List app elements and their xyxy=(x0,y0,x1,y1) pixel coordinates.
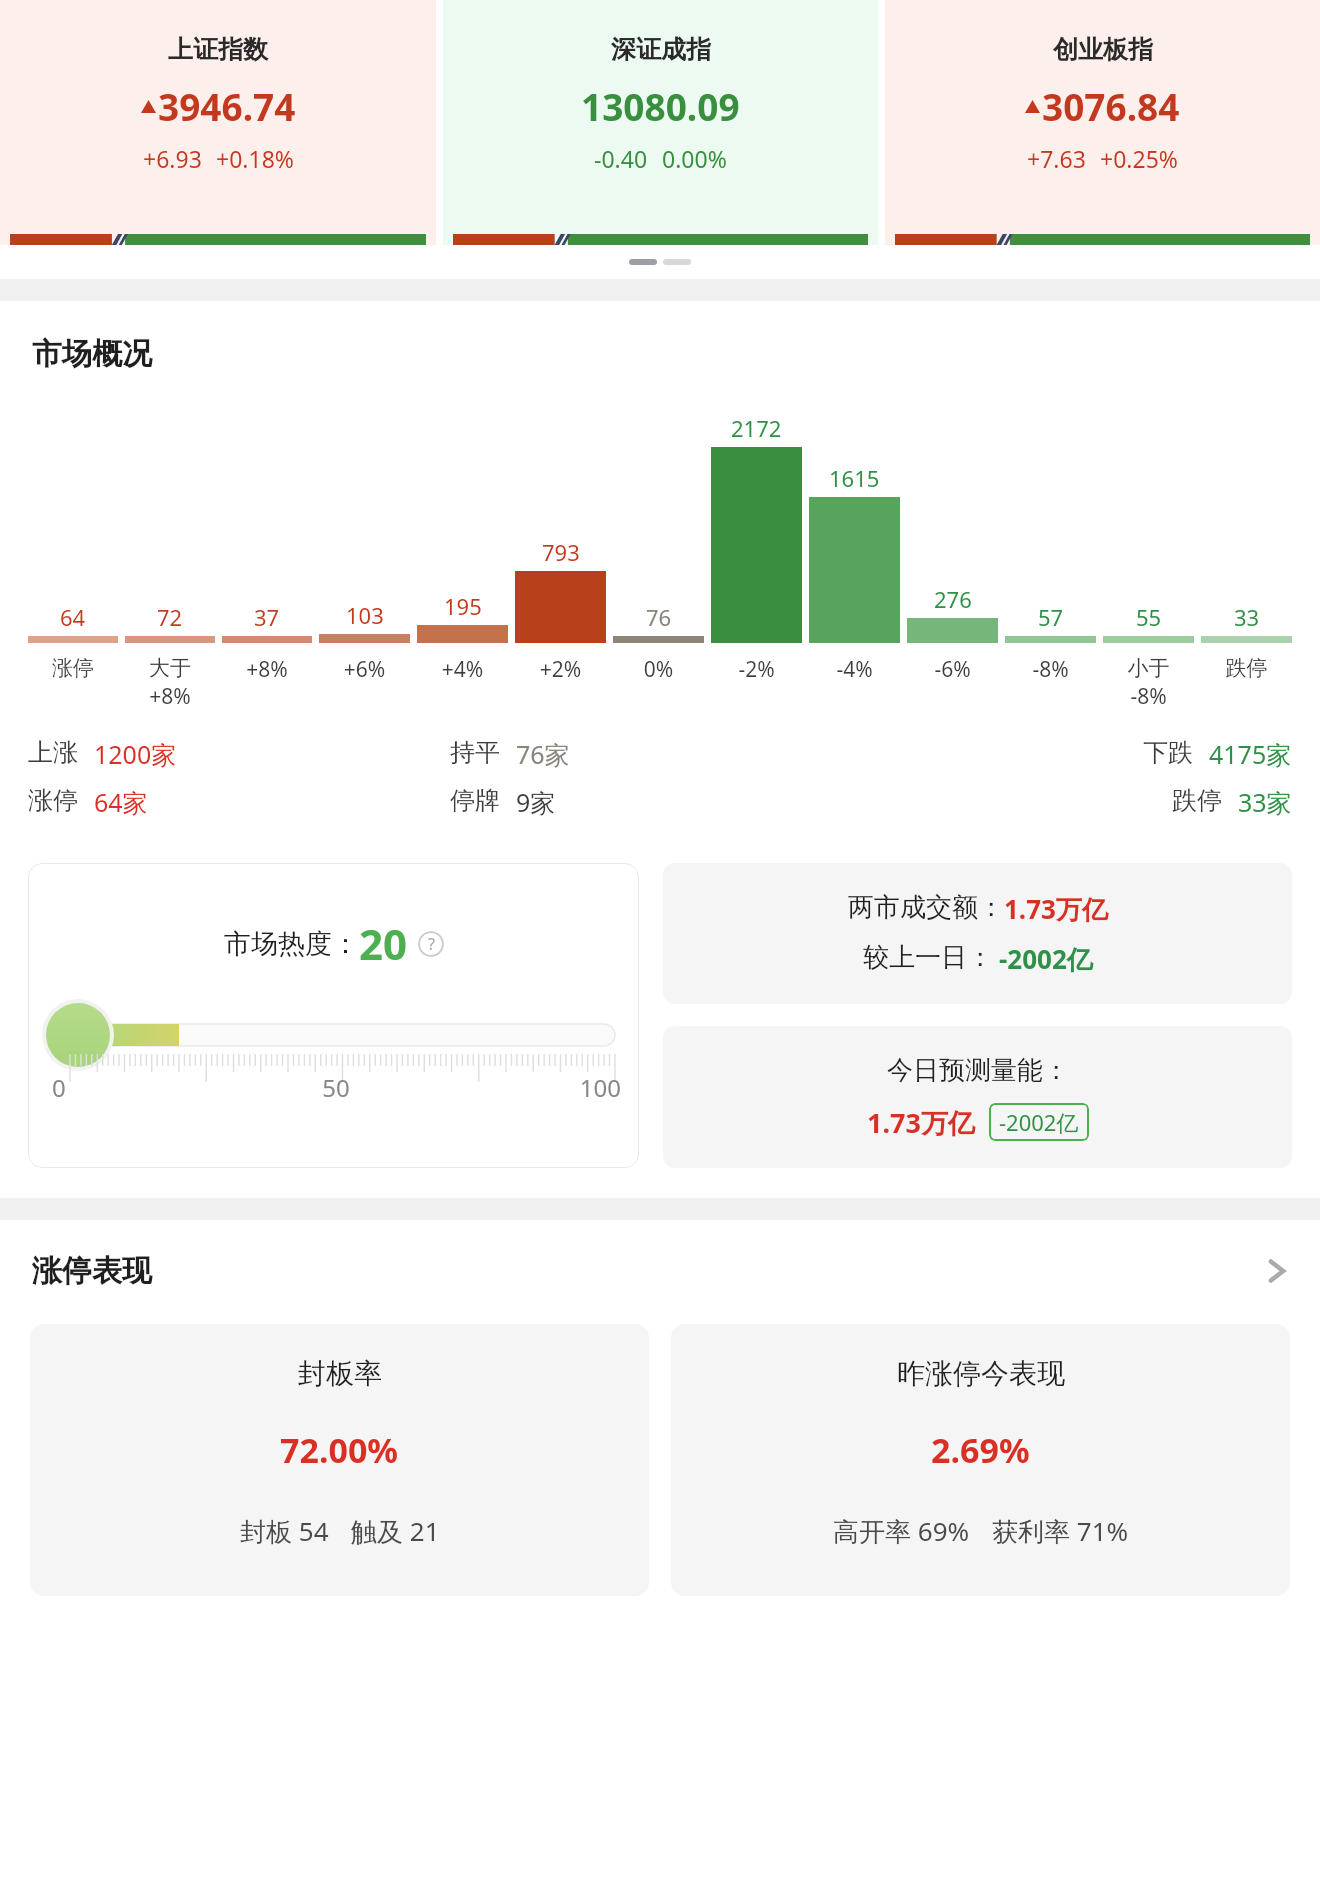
button[interactable]: 帮助 xyxy=(418,931,444,957)
staticText: 72 xyxy=(157,602,183,632)
staticText: 3946.74 xyxy=(158,81,296,131)
staticText: 0% xyxy=(613,655,704,684)
staticText: 76家 xyxy=(516,737,570,771)
staticText: +0.25% xyxy=(1100,143,1178,174)
staticText: 4175家 xyxy=(1209,737,1292,771)
button[interactable]: 封板率 xyxy=(30,1324,649,1596)
staticText: 1200家 xyxy=(94,737,177,771)
button[interactable]: 上证指数 xyxy=(0,0,436,245)
staticText: 76 xyxy=(646,602,672,632)
staticText: -8% xyxy=(1005,655,1096,684)
staticText: 2172 xyxy=(731,413,782,443)
staticText: 市场热度： xyxy=(224,927,359,961)
staticText: 触及 21 xyxy=(351,1513,440,1549)
staticText: +6% xyxy=(319,655,410,684)
staticText: 1.73万亿 xyxy=(867,1104,975,1141)
staticText: 封板率 xyxy=(298,1356,382,1391)
staticText: 停牌 xyxy=(450,785,500,816)
button[interactable]: 涨停表现 xyxy=(0,1252,1320,1290)
staticText: -2002亿 xyxy=(999,1107,1079,1137)
staticText: -2% xyxy=(711,655,802,684)
button[interactable]: 市场热度： xyxy=(28,863,639,1168)
staticText: 涨停 xyxy=(28,655,118,681)
staticText: -0.40 xyxy=(594,143,648,174)
staticText: 103 xyxy=(346,600,384,630)
staticText: 57 xyxy=(1038,602,1064,632)
staticText: 195 xyxy=(444,591,482,621)
staticText: 100 xyxy=(431,1071,621,1104)
staticText: 0 xyxy=(52,1071,241,1104)
staticText: 33家 xyxy=(1238,785,1292,819)
staticText: 13080.09 xyxy=(581,81,740,131)
staticText: +4% xyxy=(417,655,508,684)
button[interactable]: 深证成指 xyxy=(443,0,878,245)
staticText: 55 xyxy=(1136,602,1162,632)
staticText: 今日预测量能： xyxy=(887,1054,1069,1087)
staticText: 37 xyxy=(254,602,280,632)
staticText: +7.63 xyxy=(1027,143,1086,174)
staticText: -6% xyxy=(907,655,998,684)
staticText: +8% xyxy=(222,655,312,684)
staticText: 较上一日： xyxy=(863,941,993,974)
staticText: 涨停 xyxy=(28,785,78,816)
button[interactable]: 两市成交额： xyxy=(663,863,1292,1004)
staticText: -4% xyxy=(809,655,900,684)
staticText: 高开率 69% xyxy=(833,1513,970,1549)
staticText: 793 xyxy=(542,537,580,567)
staticText: 64 xyxy=(60,602,86,632)
button[interactable]: 今日预测量能： xyxy=(663,1026,1292,1168)
staticText: 0.00% xyxy=(662,143,727,174)
staticText: 涨停表现 xyxy=(32,1252,1266,1290)
staticText: 下跌 xyxy=(1143,737,1193,768)
staticText: 3076.84 xyxy=(1042,81,1180,131)
staticText: +6.93 xyxy=(143,143,202,174)
staticText: 9家 xyxy=(516,785,556,819)
staticText: 市场概况 xyxy=(32,335,152,373)
staticText: 封板 54 xyxy=(240,1513,329,1549)
staticText: -2002亿 xyxy=(999,941,1093,977)
staticText: +0.18% xyxy=(216,143,294,174)
staticText: 2.69% xyxy=(931,1427,1030,1473)
staticText: 小于 -8% xyxy=(1103,655,1194,711)
staticText: 大于 +8% xyxy=(125,655,215,711)
staticText: 33 xyxy=(1234,602,1260,632)
staticText: 持平 xyxy=(450,737,500,768)
staticText: 1615 xyxy=(829,463,880,493)
staticText: ? xyxy=(428,933,435,955)
staticText: +2% xyxy=(515,655,606,684)
staticText: 上证指数 xyxy=(168,34,268,65)
staticText: 276 xyxy=(934,584,972,614)
staticText: 1.73万亿 xyxy=(1004,891,1108,927)
staticText: 72.00% xyxy=(280,1427,399,1473)
button[interactable]: 创业板指 xyxy=(885,0,1320,245)
staticText: 昨涨停今表现 xyxy=(897,1356,1065,1391)
staticText: 跌停 xyxy=(1172,785,1222,816)
staticText: 获利率 71% xyxy=(992,1513,1129,1549)
button[interactable]: 昨涨停今表现 xyxy=(671,1324,1290,1596)
staticText: 跌停 xyxy=(1201,655,1292,681)
other: 更多 xyxy=(1266,1254,1288,1288)
staticText: 深证成指 xyxy=(611,34,711,65)
staticText: 20 xyxy=(359,915,408,972)
staticText: 上涨 xyxy=(28,737,78,768)
staticText: 50 xyxy=(241,1071,431,1104)
staticText: 两市成交额： xyxy=(848,891,1004,924)
staticText: 创业板指 xyxy=(1053,34,1153,65)
staticText: 64家 xyxy=(94,785,148,819)
